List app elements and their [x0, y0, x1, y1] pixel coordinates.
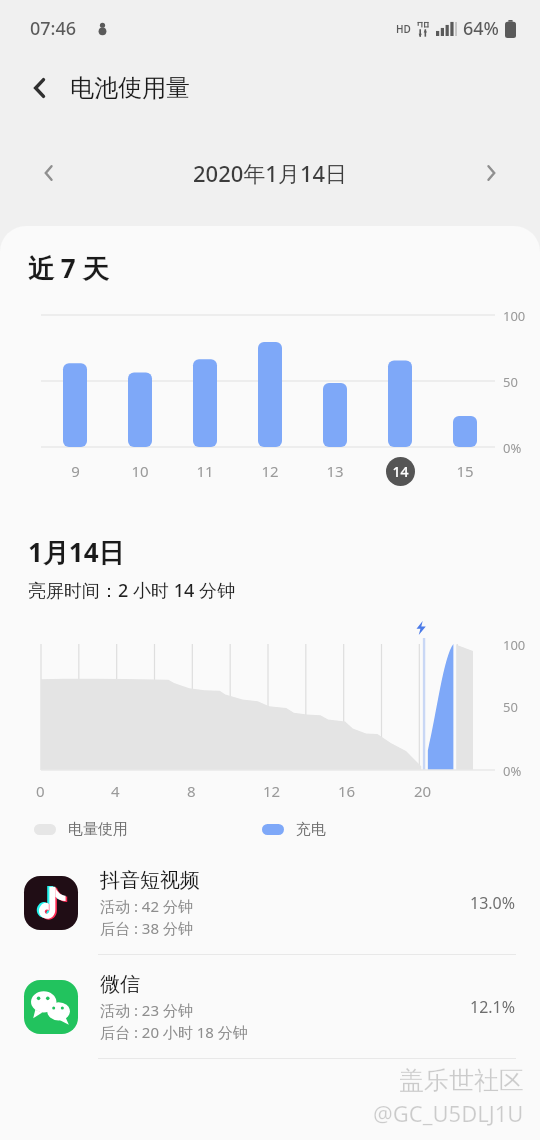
staticText: 亮屏时间：2 小时 14 分钟: [28, 578, 235, 603]
staticText: 电量使用: [68, 820, 128, 839]
staticText: 2020年1月14日: [193, 158, 348, 188]
staticText: 0%: [503, 762, 522, 780]
button[interactable]: 10: [123, 456, 157, 486]
button[interactable]: 15: [448, 456, 482, 486]
button[interactable]: 11: [188, 456, 222, 486]
staticText: 盖乐世社区: [399, 1065, 524, 1096]
button[interactable]: 抖音短视频: [0, 851, 540, 955]
staticText: 13.0%: [470, 892, 516, 914]
button[interactable]: 前一天: [26, 150, 72, 196]
staticText: 12.1%: [470, 996, 516, 1018]
button[interactable]: 13: [318, 456, 352, 486]
staticText: 100: [503, 636, 526, 654]
button[interactable]: 返回: [16, 64, 64, 112]
staticText: 活动 : 42 分钟: [100, 896, 193, 916]
staticText: 50: [503, 698, 518, 716]
staticText: HD: [396, 22, 411, 36]
staticText: 15: [456, 461, 474, 481]
staticText: 11: [196, 461, 214, 481]
staticText: 10: [131, 461, 149, 481]
staticText: 50: [503, 373, 518, 391]
staticText: @GC_U5DLJ1U: [373, 1098, 524, 1128]
button[interactable]: 微信: [0, 955, 540, 1059]
staticText: 12: [263, 781, 281, 801]
staticText: 电池使用量: [70, 73, 190, 103]
button[interactable]: 12: [253, 456, 287, 486]
staticText: 8: [187, 781, 196, 801]
staticText: 9: [71, 461, 80, 481]
staticText: 1月14日: [28, 534, 125, 570]
button[interactable]: 14: [383, 456, 417, 486]
staticText: 近 7 天: [28, 250, 109, 286]
staticText: 0: [36, 781, 45, 801]
button[interactable]: 9: [58, 456, 92, 486]
staticText: 14: [392, 462, 409, 481]
staticText: 微信: [100, 972, 140, 997]
staticText: 抖音短视频: [100, 868, 200, 893]
staticText: 后台 : 20 小时 18 分钟: [100, 1022, 248, 1042]
staticText: 0%: [503, 439, 522, 457]
staticText: 16: [338, 781, 356, 801]
staticText: 12: [261, 461, 279, 481]
staticText: 20: [414, 781, 432, 801]
button[interactable]: 后一天: [468, 150, 514, 196]
staticText: 13: [326, 461, 344, 481]
staticText: 活动 : 23 分钟: [100, 1000, 193, 1020]
staticText: 100: [503, 307, 526, 325]
staticText: 后台 : 38 分钟: [100, 918, 193, 938]
staticText: 充电: [296, 820, 326, 839]
staticText: 4: [111, 781, 120, 801]
staticText: 07:46: [30, 16, 77, 41]
staticText: 64%: [463, 16, 499, 41]
